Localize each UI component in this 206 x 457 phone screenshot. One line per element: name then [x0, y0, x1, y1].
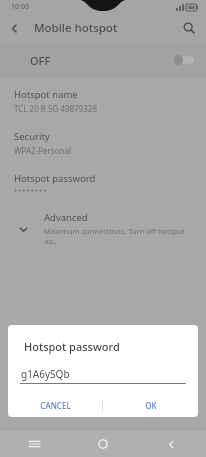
staticText: Hotspot name: [14, 88, 78, 101]
staticText: Hotspot password: [24, 339, 120, 354]
staticText: Mobile hotspot: [34, 20, 118, 36]
staticText: Advanced: [44, 211, 88, 224]
button[interactable]: OFF: [0, 42, 206, 78]
staticText: TCL 20 R 5G 49879328: [14, 103, 97, 114]
button[interactable]: Back: [0, 14, 28, 42]
button[interactable]: Search: [176, 15, 202, 41]
staticText: CANCEL: [40, 400, 71, 411]
button[interactable]: Home: [68, 431, 137, 457]
staticText: OFF: [30, 53, 51, 68]
button[interactable]: Hotspot name: [0, 86, 206, 116]
button[interactable]: g1A6ySQb: [20, 367, 186, 384]
button[interactable]: Back: [137, 431, 206, 457]
staticText: Maximum connections, Turn off hotspot au…: [44, 226, 192, 246]
staticText: WPA2-Personal: [14, 145, 71, 156]
button[interactable]: OK: [103, 395, 198, 415]
staticText: 10:00: [11, 2, 29, 12]
button[interactable]: Recent apps: [0, 431, 68, 457]
staticText: OK: [145, 400, 157, 411]
staticText: g1A6ySQb: [21, 367, 70, 381]
button[interactable]: CANCEL: [8, 395, 102, 415]
button[interactable]: Advanced: [0, 209, 206, 248]
staticText: Hotspot password: [14, 172, 96, 185]
button[interactable]: Security: [0, 128, 206, 158]
button[interactable]: Hotspot password: [0, 170, 206, 195]
staticText: Security: [14, 130, 50, 143]
